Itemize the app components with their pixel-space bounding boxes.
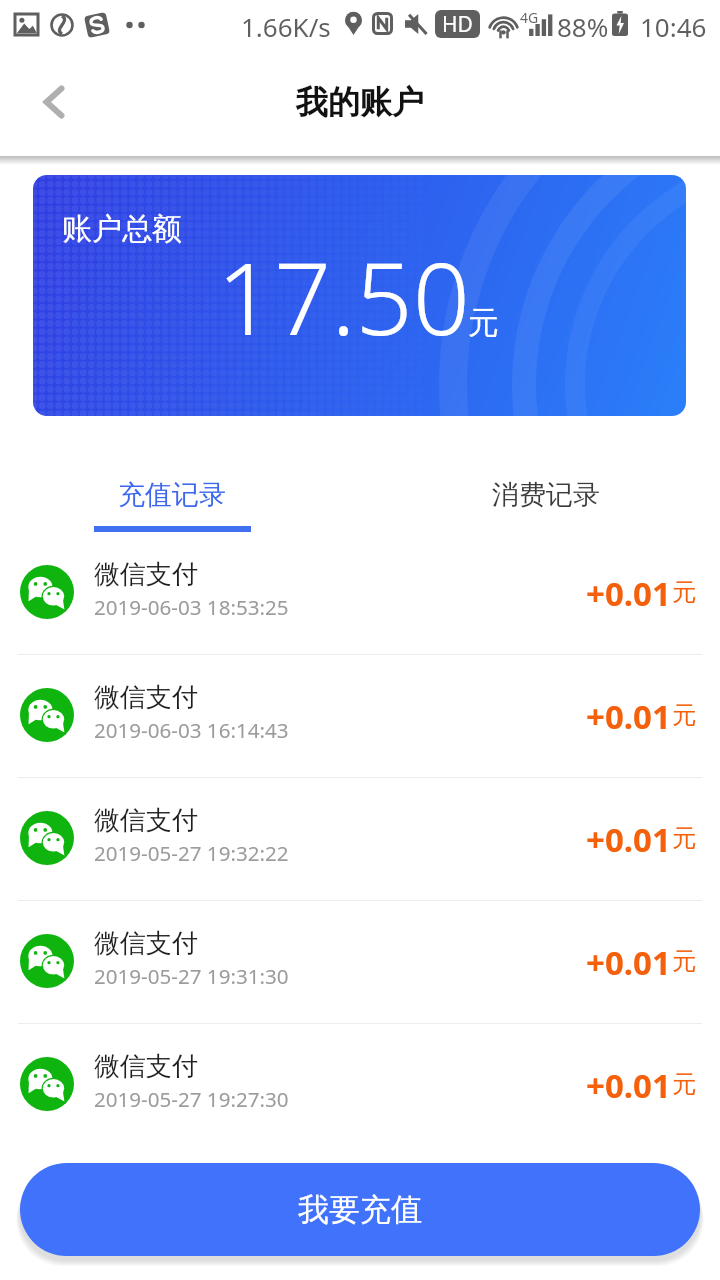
button[interactable]: 我要充值 bbox=[20, 1163, 700, 1256]
staticText: 88% bbox=[557, 9, 609, 44]
button[interactable]: 微信支付 bbox=[0, 900, 720, 1023]
staticText: 元 bbox=[672, 577, 696, 607]
staticText: 元 bbox=[672, 700, 696, 730]
staticText: 2019-05-27 19:31:30 bbox=[94, 962, 289, 990]
staticText: 充值记录 bbox=[118, 478, 226, 512]
staticText: 我要充值 bbox=[298, 1190, 422, 1229]
staticText: 微信支付 bbox=[94, 1050, 198, 1083]
staticText: 元 bbox=[672, 946, 696, 976]
staticText: +0.01 bbox=[586, 694, 671, 739]
button[interactable]: Back bbox=[52, 79, 100, 127]
staticText: 消费记录 bbox=[492, 478, 600, 512]
button[interactable]: 微信支付 bbox=[0, 654, 720, 777]
staticText: 17.50 bbox=[217, 228, 470, 364]
staticText: 微信支付 bbox=[94, 558, 198, 591]
staticText: 2019-06-03 16:14:43 bbox=[94, 716, 289, 744]
staticText: 元 bbox=[672, 823, 696, 853]
button[interactable]: 微信支付 bbox=[0, 531, 720, 654]
staticText: 元 bbox=[672, 1069, 696, 1099]
button[interactable]: 充值记录 bbox=[22, 452, 322, 531]
staticText: 4G bbox=[520, 8, 539, 27]
staticText: 10:46 bbox=[640, 9, 707, 44]
staticText: 微信支付 bbox=[94, 681, 198, 714]
button[interactable]: 微信支付 bbox=[0, 777, 720, 900]
button[interactable]: 微信支付 bbox=[0, 1023, 720, 1146]
staticText: 微信支付 bbox=[94, 804, 198, 837]
staticText: 2019-06-03 18:53:25 bbox=[94, 593, 289, 621]
staticText: 我的账户 bbox=[296, 82, 424, 122]
staticText: 1.66K/s bbox=[241, 9, 331, 44]
staticText: +0.01 bbox=[586, 817, 671, 862]
staticText: 账户总额 bbox=[62, 210, 182, 248]
staticText: +0.01 bbox=[586, 571, 671, 616]
button[interactable]: 账户总额 bbox=[33, 175, 686, 416]
staticText: +0.01 bbox=[586, 1063, 671, 1108]
staticText: +0.01 bbox=[586, 940, 671, 985]
staticText: 2019-05-27 19:32:22 bbox=[94, 839, 289, 867]
button[interactable]: 消费记录 bbox=[396, 452, 696, 531]
staticText: HD bbox=[442, 10, 473, 38]
staticText: 微信支付 bbox=[94, 927, 198, 960]
staticText: 元 bbox=[468, 303, 499, 342]
staticText: 2019-05-27 19:27:30 bbox=[94, 1085, 289, 1113]
